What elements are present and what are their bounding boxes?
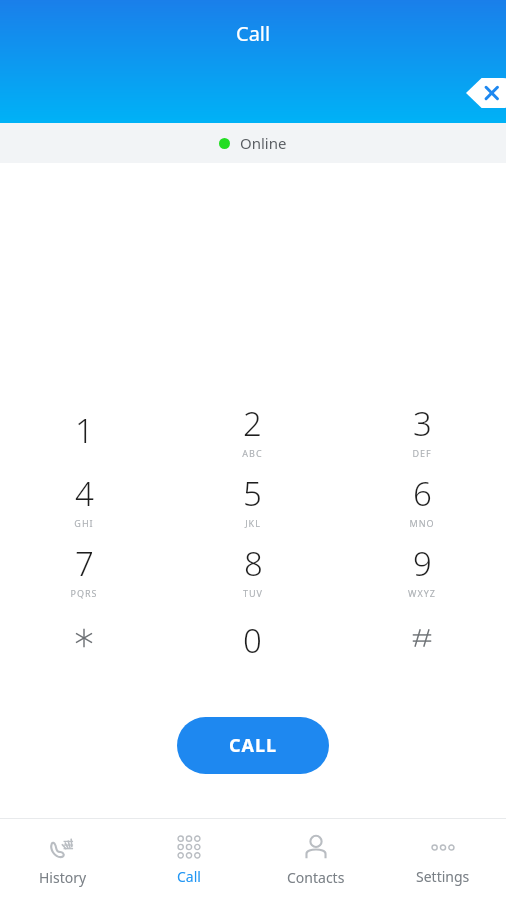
staticText: History xyxy=(39,868,87,887)
staticText: 5 xyxy=(243,471,262,516)
staticText: 2 xyxy=(243,401,262,446)
button[interactable] xyxy=(0,607,168,677)
button[interactable]: 9 xyxy=(337,537,506,607)
staticText: 0 xyxy=(243,618,262,663)
button[interactable]: 0 xyxy=(168,607,337,677)
button[interactable]: 1 xyxy=(0,397,168,467)
staticText: 6 xyxy=(413,471,432,516)
staticText: 7 xyxy=(75,541,94,586)
staticText: 8 xyxy=(244,541,263,586)
staticText: WXYZ xyxy=(408,587,436,599)
staticText: 9 xyxy=(413,541,432,586)
staticText: CALL xyxy=(229,733,278,758)
button[interactable]: 5 xyxy=(168,467,337,537)
staticText: MNO xyxy=(409,517,435,529)
button[interactable]: History xyxy=(0,825,126,895)
staticText: 1 xyxy=(75,408,94,453)
staticText: Call xyxy=(236,20,271,47)
button[interactable] xyxy=(337,607,506,677)
staticText: PQRS xyxy=(70,587,98,599)
staticText: Call xyxy=(177,867,201,886)
staticText: Contacts xyxy=(287,868,345,887)
staticText: Online xyxy=(240,133,287,153)
button[interactable]: CALL xyxy=(177,717,329,774)
button[interactable]: 6 xyxy=(337,467,506,537)
button[interactable]: 2 xyxy=(168,397,337,467)
staticText: Settings xyxy=(416,867,470,886)
button[interactable]: Settings xyxy=(379,826,506,894)
staticText: ABC xyxy=(242,447,263,459)
button[interactable]: Backspace xyxy=(466,78,506,108)
button[interactable]: 7 xyxy=(0,537,168,607)
button[interactable]: 4 xyxy=(0,467,168,537)
button[interactable]: 8 xyxy=(168,537,337,607)
staticText: 4 xyxy=(75,471,94,516)
staticText: 3 xyxy=(413,401,432,446)
button[interactable]: 3 xyxy=(337,397,506,467)
staticText: GHI xyxy=(74,517,94,529)
staticText: TUV xyxy=(243,587,263,599)
staticText: JKL xyxy=(245,517,261,529)
button[interactable]: Contacts xyxy=(252,825,379,895)
staticText: DEF xyxy=(412,447,432,459)
button[interactable]: Call xyxy=(126,826,252,894)
